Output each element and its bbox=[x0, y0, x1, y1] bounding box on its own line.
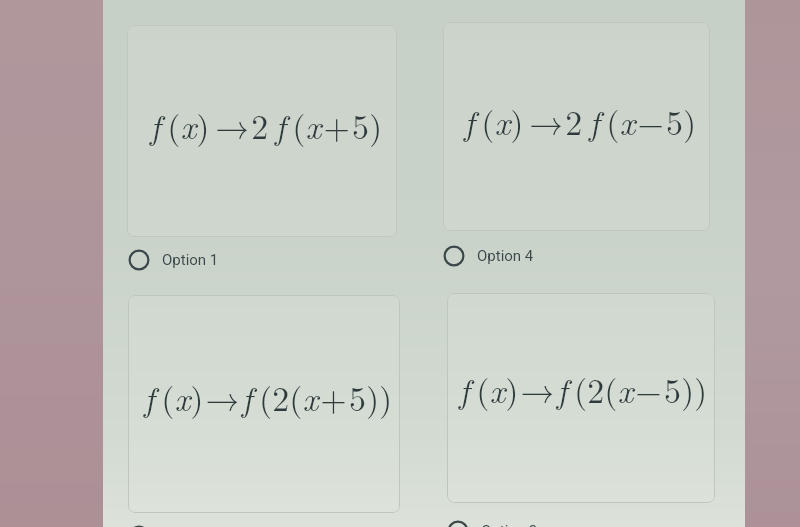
button[interactable]: Option 1 bbox=[128, 249, 219, 271]
staticText: Option 4 bbox=[477, 247, 534, 265]
button[interactable]: Option 2 bbox=[128, 525, 219, 527]
button[interactable]: f (x) → 2 f (x − 5) bbox=[443, 22, 710, 231]
staticText: f (x) → 2 f (x + 5) bbox=[150, 101, 383, 149]
staticText: f (x) → f (2(x − 5)) bbox=[459, 365, 708, 413]
button[interactable]: f (x) → 2 f (x + 5) bbox=[127, 25, 397, 237]
staticText: Option 3 bbox=[481, 522, 538, 527]
button[interactable]: f (x) → f (2(x − 5)) bbox=[447, 293, 715, 503]
staticText: f (x) → f (2(x + 5)) bbox=[144, 373, 393, 421]
staticText: f (x) → 2 f (x − 5) bbox=[464, 97, 697, 145]
button[interactable]: Option 3 bbox=[447, 520, 538, 527]
button[interactable]: f (x) → f (2(x + 5)) bbox=[128, 295, 400, 513]
staticText: Option 1 bbox=[162, 251, 219, 269]
button[interactable]: Option 4 bbox=[443, 245, 534, 267]
